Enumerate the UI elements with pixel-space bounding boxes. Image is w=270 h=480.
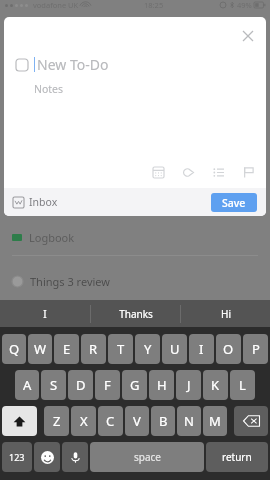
staticText: N — [184, 412, 194, 430]
button[interactable]: W — [28, 334, 52, 364]
button[interactable]: P — [243, 334, 268, 364]
staticText: S — [50, 376, 58, 394]
button[interactable]: U — [162, 334, 187, 364]
button[interactable]: X — [71, 406, 96, 436]
staticText: U — [170, 340, 180, 358]
staticText: I — [43, 307, 47, 321]
staticText: B — [159, 412, 168, 430]
button[interactable]: Hi — [181, 300, 270, 327]
button[interactable]: T — [108, 334, 133, 364]
button[interactable]: Thanks — [91, 300, 180, 327]
button[interactable]: space — [90, 442, 204, 472]
staticText: H — [157, 376, 167, 394]
button[interactable]: Deadline — [240, 164, 256, 180]
staticText: Inbox — [29, 195, 58, 209]
staticText: D — [76, 376, 86, 394]
staticText: I — [199, 340, 204, 358]
staticText: P — [252, 340, 260, 358]
staticText: Save — [222, 196, 246, 210]
button[interactable]: D — [68, 370, 93, 400]
staticText: A — [23, 376, 32, 394]
button[interactable]: When — [150, 164, 166, 180]
staticText: Z — [53, 412, 61, 430]
button[interactable]: Shift — [2, 406, 37, 436]
staticText: Logbook — [29, 230, 75, 245]
staticText: M — [209, 412, 221, 430]
button[interactable]: E — [54, 334, 79, 364]
staticText: Notes — [34, 82, 64, 96]
button[interactable]: A — [15, 370, 39, 400]
staticText: New To-Do — [37, 55, 109, 74]
staticText: Q — [9, 340, 20, 358]
button[interactable]: Q — [2, 334, 26, 364]
button[interactable]: C — [98, 406, 123, 436]
staticText: space — [134, 450, 161, 464]
button[interactable]: I — [189, 334, 214, 364]
button[interactable]: Emoji — [34, 442, 60, 472]
button[interactable]: I — [0, 300, 90, 327]
staticText: J — [187, 376, 191, 394]
staticText: 49% — [237, 0, 252, 10]
button[interactable]: N — [177, 406, 201, 436]
staticText: 123 — [9, 451, 25, 463]
button[interactable]: Checklist — [210, 164, 226, 180]
button[interactable]: Z — [44, 406, 69, 436]
button[interactable]: Complete — [16, 59, 28, 71]
button[interactable]: Backspace — [234, 406, 268, 436]
staticText: F — [104, 376, 111, 394]
staticText: G — [130, 376, 140, 394]
staticText: O — [223, 340, 234, 358]
staticText: W — [34, 340, 47, 358]
staticText: V — [133, 412, 141, 430]
staticText: E — [63, 340, 71, 358]
button[interactable]: G — [122, 370, 147, 400]
staticText: return — [222, 450, 252, 464]
button[interactable]: B — [151, 406, 175, 436]
staticText: 18:25 — [144, 0, 164, 10]
button[interactable]: K — [203, 370, 228, 400]
staticText: T — [117, 340, 125, 358]
staticText: vodafone UK — [33, 0, 79, 10]
staticText: Y — [144, 340, 152, 358]
button[interactable]: L — [230, 370, 255, 400]
staticText: L — [239, 376, 246, 394]
staticText: R — [89, 340, 98, 358]
staticText: Thanks — [119, 307, 153, 321]
staticText: Hi — [221, 307, 231, 321]
button[interactable]: Y — [135, 334, 160, 364]
button[interactable]: S — [41, 370, 66, 400]
staticText: C — [106, 412, 115, 430]
button[interactable]: Save — [211, 193, 257, 212]
staticText: Things 3 review — [30, 274, 110, 289]
button[interactable]: Close — [238, 26, 258, 46]
button[interactable]: H — [149, 370, 174, 400]
button[interactable]: V — [125, 406, 149, 436]
button[interactable]: M — [203, 406, 227, 436]
button[interactable]: 123 — [2, 442, 32, 472]
button[interactable]: O — [216, 334, 241, 364]
staticText: X — [80, 412, 88, 430]
button[interactable]: J — [176, 370, 201, 400]
button[interactable]: F — [95, 370, 120, 400]
button[interactable]: Tags — [180, 164, 196, 180]
button[interactable]: Dictation — [62, 442, 88, 472]
staticText: K — [211, 376, 220, 394]
button[interactable]: return — [206, 442, 268, 472]
button[interactable]: R — [81, 334, 106, 364]
button[interactable]: Inbox — [13, 195, 58, 209]
